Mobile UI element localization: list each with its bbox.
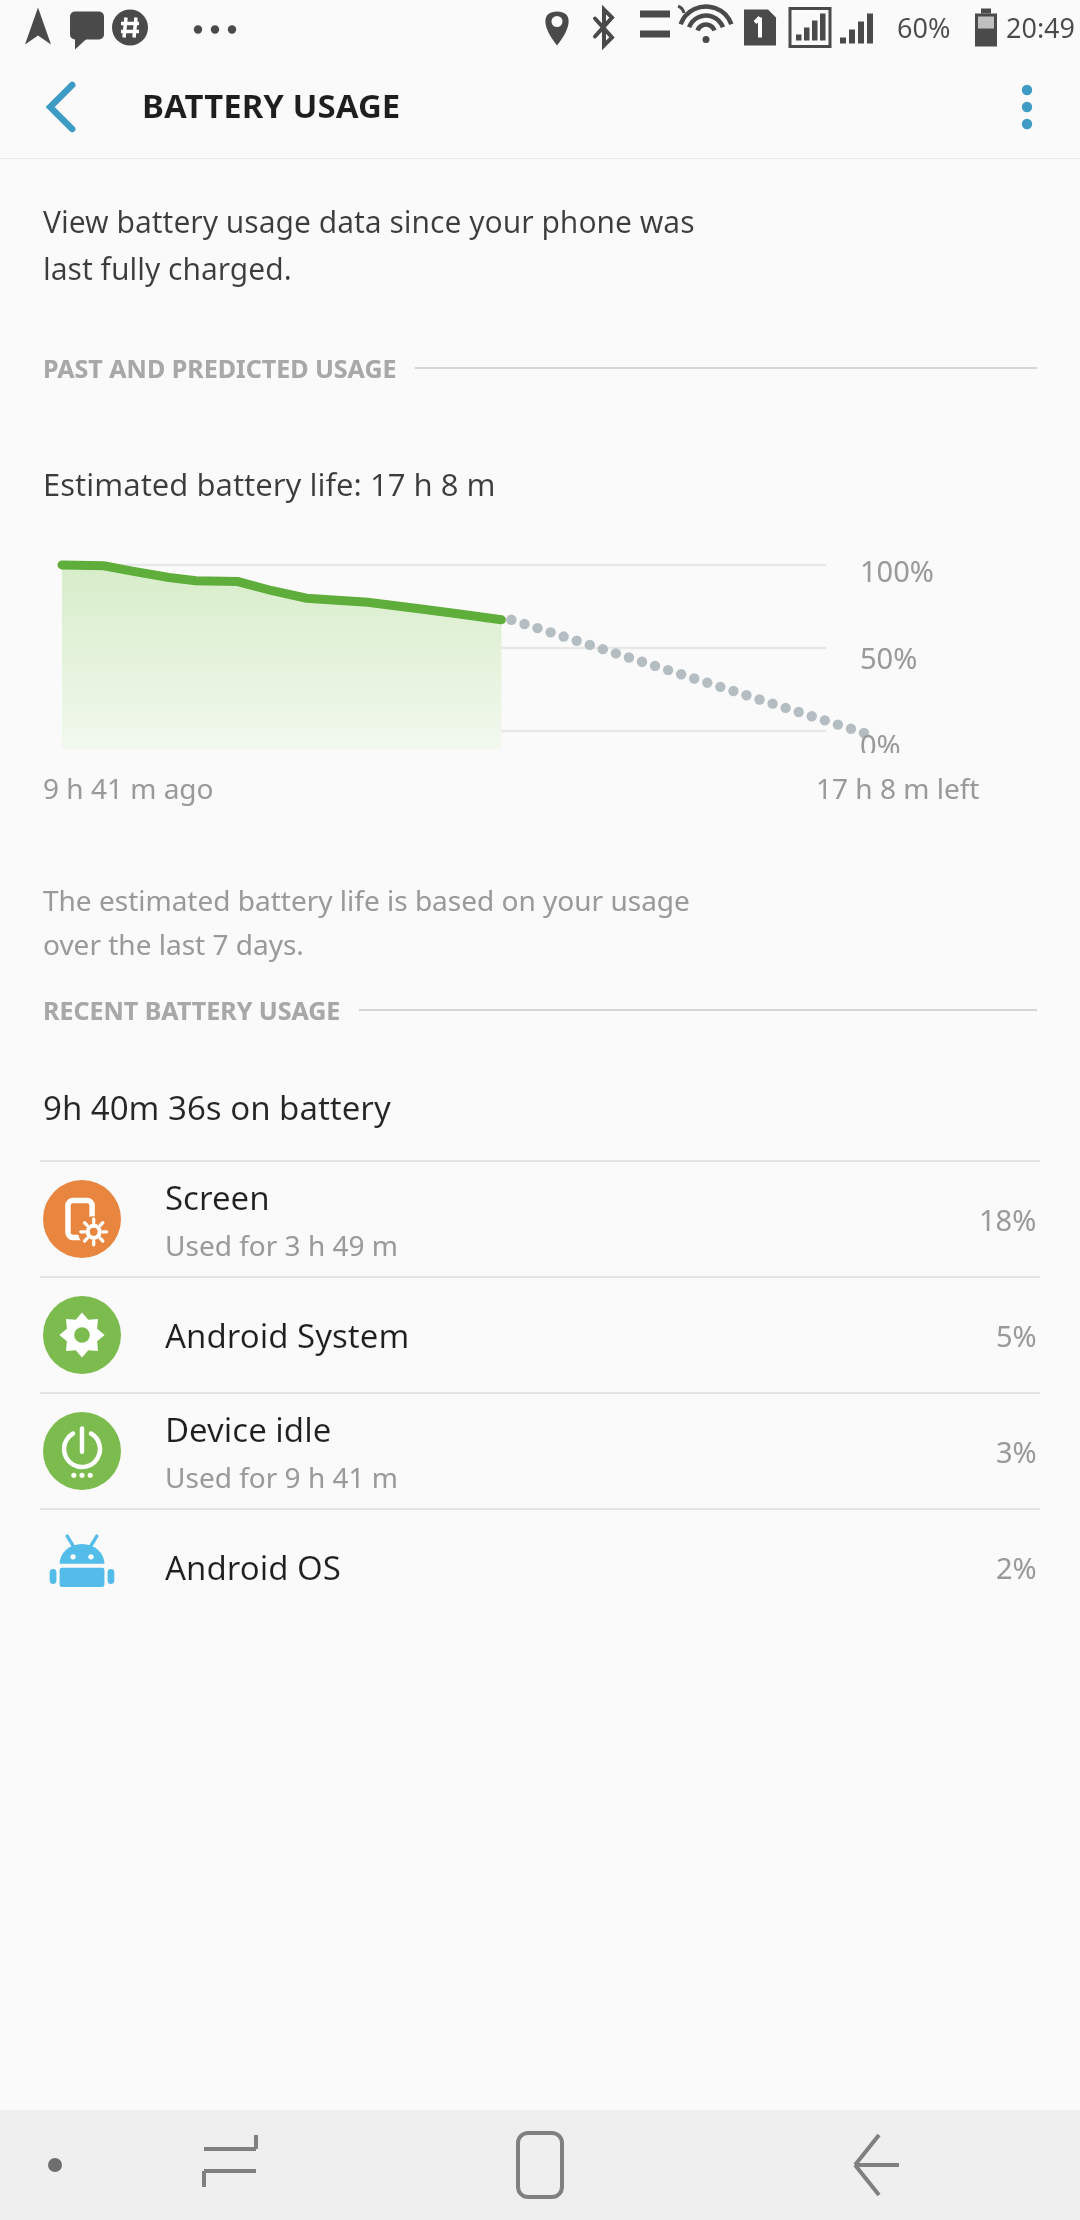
staticText: 2%: [996, 1548, 1037, 1587]
button[interactable]: Home: [495, 2120, 585, 2210]
staticText: 18%: [979, 1200, 1037, 1239]
button[interactable]: Back: [834, 2122, 920, 2208]
staticText: BATTERY USAGE: [142, 83, 401, 128]
button[interactable]: Android System: [0, 1278, 1080, 1392]
button[interactable]: Android OS: [0, 1510, 1080, 1624]
button[interactable]: Screen: [0, 1162, 1080, 1276]
staticText: The estimated battery life is based on y…: [43, 881, 690, 963]
staticText: Android System: [165, 1313, 410, 1358]
staticText: RECENT BATTERY USAGE: [43, 993, 341, 1027]
staticText: Screen: [165, 1175, 270, 1220]
staticText: 17 h 8 m left: [816, 769, 980, 807]
staticText: 0%: [860, 725, 901, 753]
staticText: 3%: [996, 1432, 1037, 1471]
staticText: Used for 9 h 41 m: [165, 1458, 398, 1496]
staticText: View battery usage data since your phone…: [43, 201, 695, 289]
staticText: 5%: [996, 1316, 1037, 1355]
button[interactable]: Keyboard indicator: [20, 2130, 90, 2200]
staticText: 100%: [860, 551, 934, 590]
staticText: PAST AND PREDICTED USAGE: [43, 351, 397, 385]
button[interactable]: Back: [30, 77, 90, 137]
button[interactable]: More options: [994, 74, 1060, 140]
staticText: 20:49: [1006, 9, 1076, 46]
staticText: 9h 40m 36s on battery: [43, 1085, 391, 1130]
staticText: Device idle: [165, 1407, 332, 1452]
staticText: 60%: [897, 9, 951, 46]
button[interactable]: Device idle: [0, 1394, 1080, 1508]
button[interactable]: Recent apps: [190, 2125, 270, 2205]
staticText: 9 h 41 m ago: [43, 769, 214, 807]
staticText: Estimated battery life: 17 h 8 m: [43, 463, 496, 505]
staticText: 50%: [860, 638, 918, 677]
staticText: Android OS: [165, 1545, 341, 1590]
staticText: Used for 3 h 49 m: [165, 1226, 398, 1264]
